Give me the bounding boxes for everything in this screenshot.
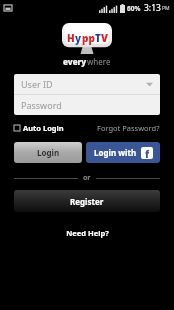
- staticText: y: [75, 31, 82, 45]
- staticText: V: [101, 31, 108, 45]
- staticText: PM: [162, 5, 170, 12]
- staticText: Register: [70, 196, 104, 207]
- other: Choose saved user: [146, 82, 153, 87]
- staticText: 60%: [127, 4, 141, 13]
- staticText: every: [63, 56, 87, 67]
- staticText: T: [95, 31, 101, 45]
- staticText: Need Help?: [66, 228, 109, 238]
- button[interactable]: Password: [14, 95, 160, 115]
- other: Facebook: [141, 147, 153, 159]
- button[interactable]: User ID: [14, 74, 160, 94]
- staticText: Auto Login: [23, 123, 64, 133]
- staticText: pp: [82, 31, 95, 45]
- staticText: or: [83, 173, 91, 183]
- button[interactable]: Forgot Password?: [97, 123, 160, 133]
- staticText: Login: [37, 147, 60, 158]
- staticText: Login with: [94, 147, 137, 158]
- staticText: Forgot Password?: [97, 123, 160, 133]
- staticText: where: [87, 56, 111, 67]
- button[interactable]: Need Help?: [62, 224, 113, 242]
- button[interactable]: Login: [14, 142, 82, 163]
- button[interactable]: Register: [14, 190, 160, 212]
- staticText: 3:13: [144, 2, 161, 14]
- staticText: H: [67, 31, 75, 45]
- staticText: f: [145, 147, 150, 159]
- staticText: User ID: [21, 78, 53, 90]
- button[interactable]: Auto Login: [14, 123, 64, 133]
- staticText: Password: [21, 99, 62, 111]
- button[interactable]: Login with: [86, 142, 160, 163]
